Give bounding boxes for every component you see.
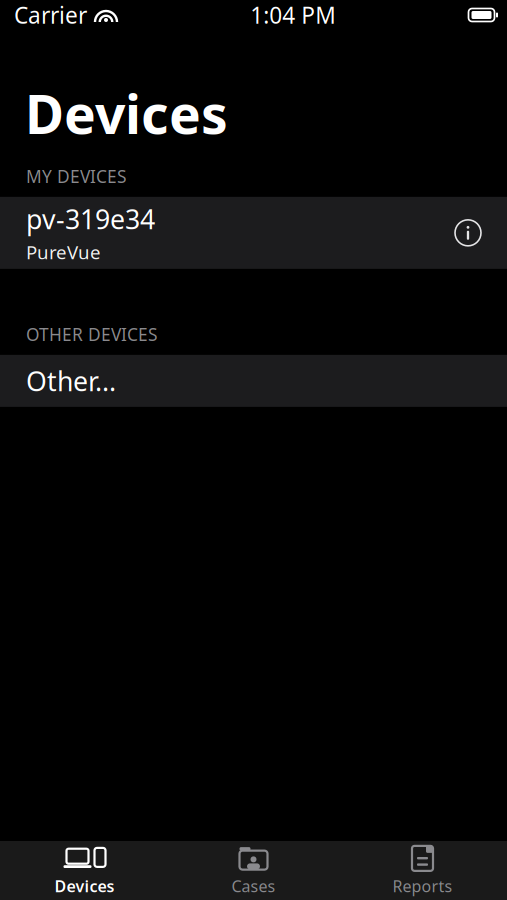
staticText: PureVue bbox=[26, 240, 101, 264]
button[interactable]: pv-319e34 bbox=[0, 197, 507, 269]
staticText: Cases bbox=[231, 875, 275, 897]
staticText: Reports bbox=[392, 875, 452, 897]
staticText: 1:04 PM bbox=[250, 0, 336, 30]
staticText: Devices bbox=[25, 78, 228, 149]
staticText: MY DEVICES bbox=[26, 165, 127, 188]
staticText: Other... bbox=[26, 363, 116, 399]
button[interactable]: Cases bbox=[169, 836, 338, 900]
button[interactable]: Devices bbox=[0, 836, 169, 900]
button[interactable]: Other... bbox=[0, 355, 507, 407]
staticText: OTHER DEVICES bbox=[26, 323, 158, 346]
staticText: pv-319e34 bbox=[26, 201, 155, 237]
button[interactable]: Reports bbox=[338, 836, 507, 900]
staticText: Devices bbox=[54, 875, 114, 897]
staticText: Carrier bbox=[14, 0, 87, 30]
